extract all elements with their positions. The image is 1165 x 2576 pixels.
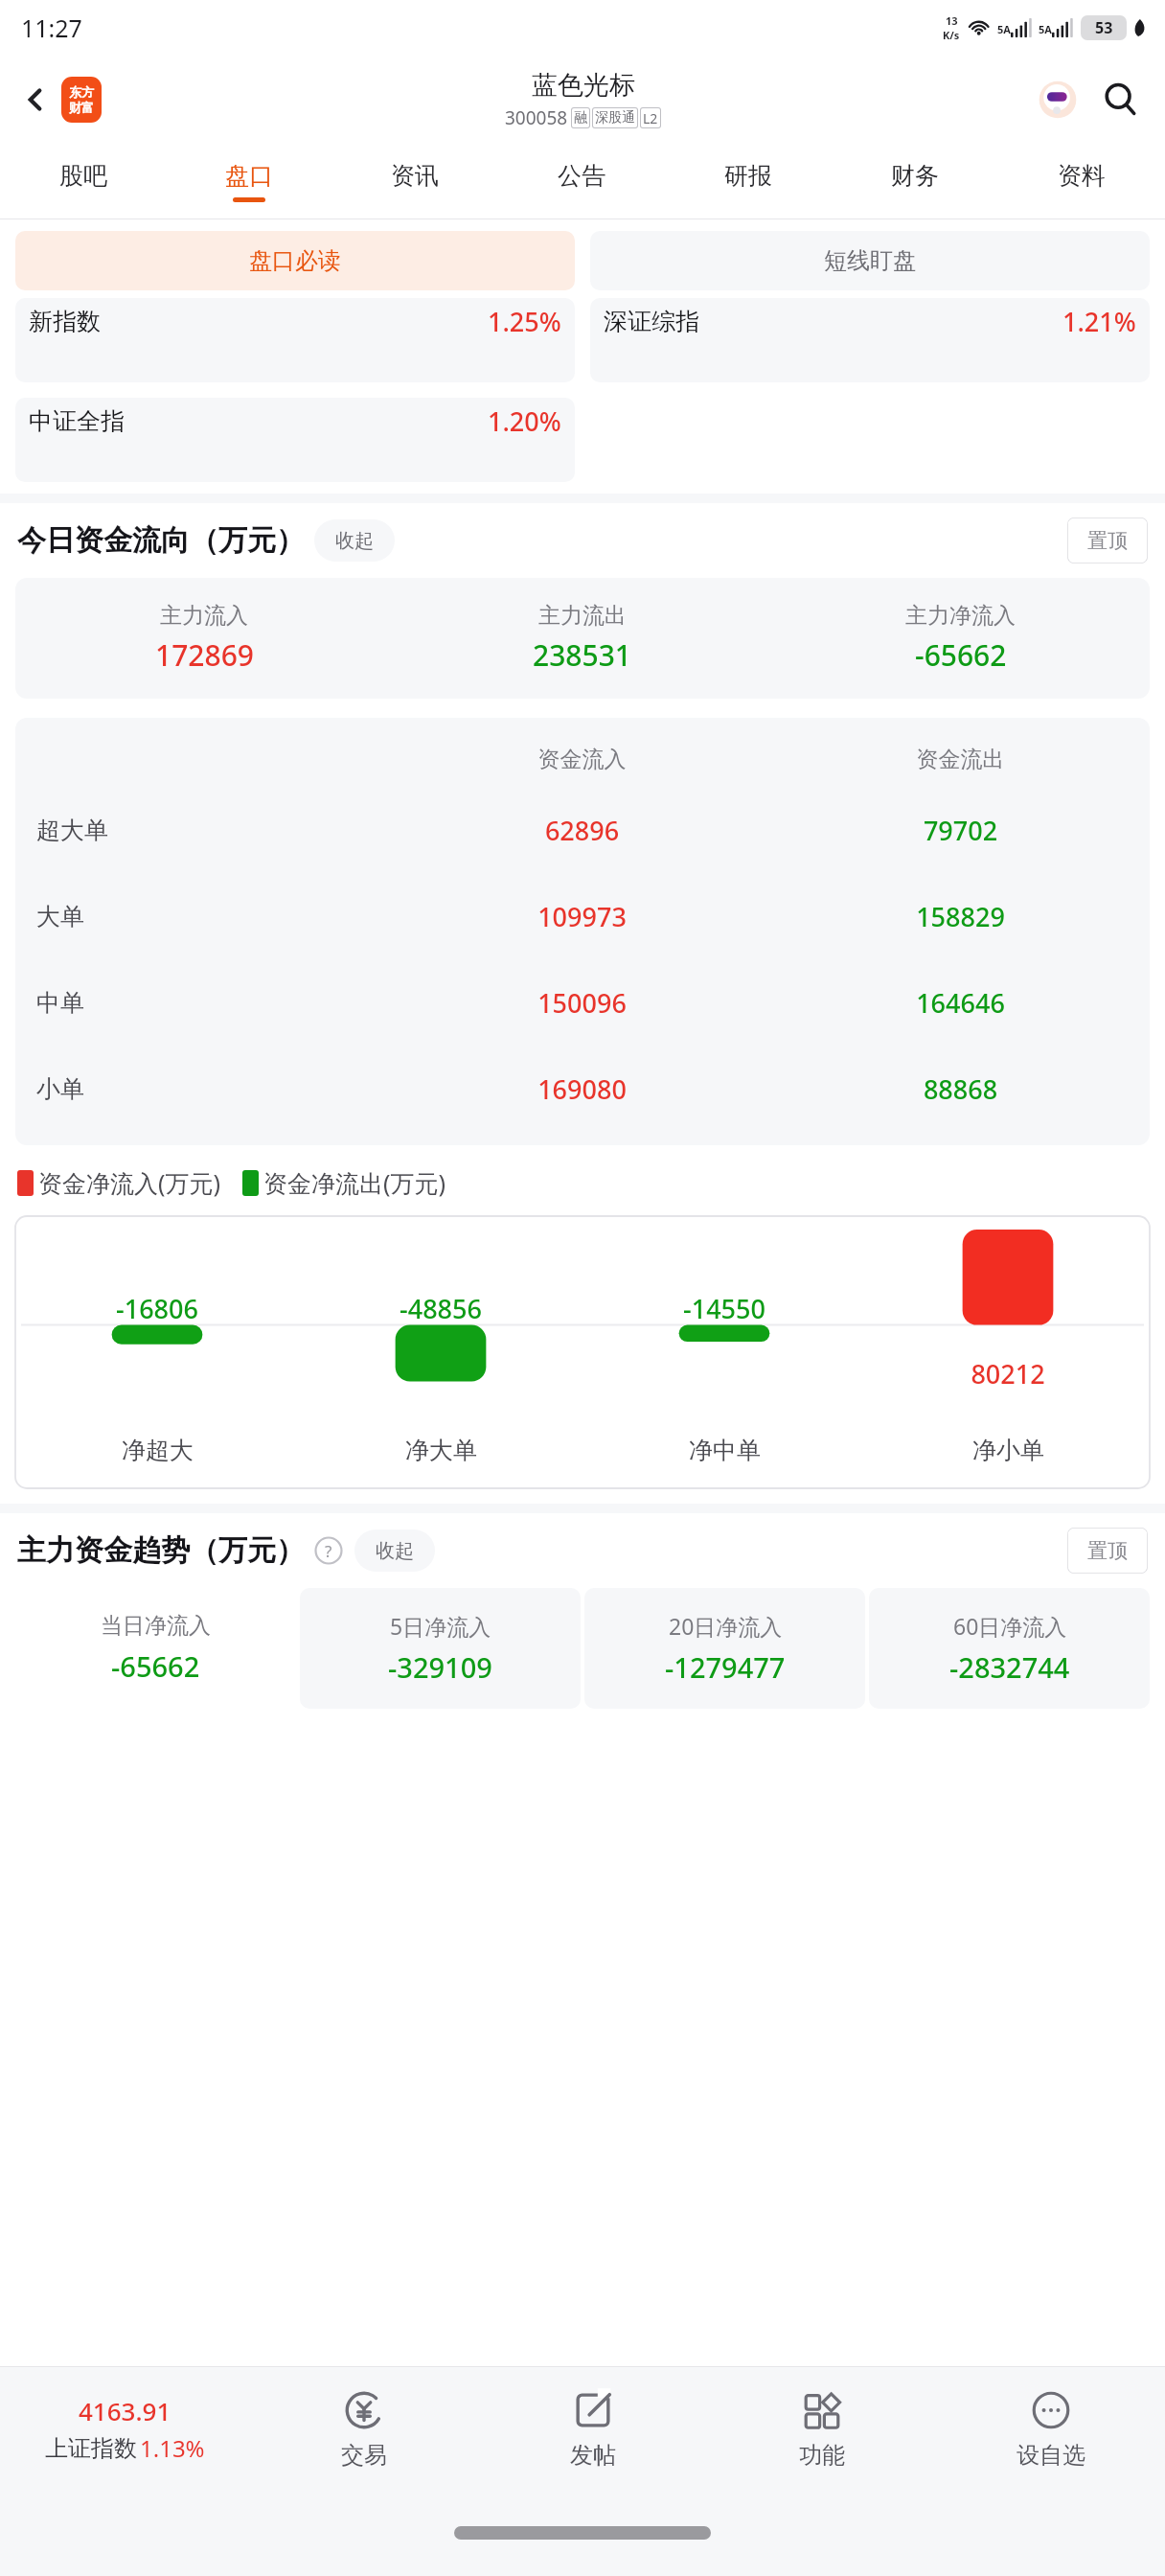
- staticText: 收起: [335, 529, 374, 553]
- button[interactable]: 5日净流入: [300, 1588, 581, 1709]
- staticText: 300058: [505, 105, 568, 130]
- staticText: 超大单: [36, 816, 108, 845]
- button[interactable]: 公告: [498, 144, 665, 218]
- staticText: 主力流出: [538, 602, 627, 630]
- staticText: 158829: [771, 899, 1150, 934]
- staticText: 置顶: [1087, 1538, 1128, 1563]
- button[interactable]: 短线盯盘: [590, 231, 1150, 290]
- staticText: 深证综指: [604, 307, 699, 336]
- staticText: 1.13%: [140, 2432, 205, 2464]
- staticText: 20日净流入: [669, 1611, 783, 1641]
- button[interactable]: 置顶: [1067, 1528, 1148, 1574]
- staticText: 财务: [891, 161, 939, 191]
- staticText: 资金流入: [393, 746, 771, 773]
- staticText: 主力资金趋势（万元）: [17, 1532, 305, 1569]
- staticText: 当日净流入: [101, 1612, 211, 1640]
- button[interactable]: AI assistant: [1033, 75, 1083, 125]
- button[interactable]: 资讯: [331, 144, 498, 218]
- button[interactable]: 4163.91: [0, 2394, 249, 2464]
- staticText: 238531: [533, 635, 631, 675]
- staticText: 1.21%: [1062, 304, 1136, 339]
- staticText: 80212: [971, 1356, 1045, 1391]
- staticText: 5A: [997, 22, 1011, 36]
- staticText: -16806: [116, 1291, 198, 1326]
- staticText: 5A: [1039, 22, 1052, 36]
- button[interactable]: 当日净流入: [15, 1588, 296, 1709]
- button[interactable]: 收起: [314, 519, 395, 562]
- staticText: -48856: [400, 1291, 482, 1326]
- button[interactable]: 资料: [998, 144, 1165, 218]
- button[interactable]: Search: [1096, 75, 1146, 125]
- staticText: -65662: [915, 635, 1007, 675]
- staticText: 169080: [393, 1071, 771, 1107]
- staticText: 今日资金流向（万元）: [17, 522, 305, 559]
- button[interactable]: 研报: [665, 144, 832, 218]
- staticText: 上证指数: [45, 2434, 137, 2463]
- staticText: 研报: [724, 161, 772, 191]
- staticText: 53: [1095, 17, 1113, 38]
- staticText: 62896: [393, 813, 771, 848]
- staticText: 盘口必读: [249, 246, 341, 275]
- staticText: 设自选: [1017, 2441, 1085, 2470]
- staticText: 东方: [69, 84, 94, 100]
- staticText: 股吧: [59, 161, 107, 191]
- staticText: 小单: [36, 1074, 84, 1104]
- button[interactable]: East Money logo: [61, 77, 102, 123]
- staticText: 置顶: [1087, 528, 1128, 553]
- button[interactable]: 交易: [249, 2367, 478, 2490]
- staticText: L2: [643, 109, 658, 127]
- staticText: 13: [946, 13, 958, 28]
- staticText: 79702: [771, 813, 1150, 848]
- staticText: 蓝色光标: [532, 69, 635, 102]
- button[interactable]: 财务: [832, 144, 998, 218]
- button[interactable]: 设自选: [936, 2367, 1165, 2490]
- staticText: 财富: [69, 100, 94, 115]
- button[interactable]: 盘口: [166, 144, 331, 218]
- staticText: 盘口: [225, 161, 273, 191]
- staticText: 中单: [36, 988, 84, 1018]
- staticText: 1.20%: [488, 403, 561, 439]
- button[interactable]: 收起: [354, 1529, 435, 1572]
- staticText: 11:27: [21, 11, 82, 44]
- staticText: 资讯: [391, 161, 439, 191]
- staticText: -329109: [388, 1648, 492, 1686]
- staticText: 资金流出: [771, 746, 1150, 773]
- staticText: 发帖: [570, 2441, 616, 2470]
- button[interactable]: 股吧: [0, 144, 166, 218]
- staticText: 109973: [393, 899, 771, 934]
- staticText: 主力净流入: [905, 602, 1016, 630]
- staticText: 150096: [393, 985, 771, 1021]
- staticText: -2832744: [949, 1648, 1070, 1686]
- button[interactable]: Back: [13, 78, 57, 122]
- staticText: 短线盯盘: [824, 246, 916, 275]
- staticText: 净中单: [689, 1436, 761, 1465]
- staticText: 88868: [771, 1071, 1150, 1107]
- button[interactable]: 60日净流入: [869, 1588, 1150, 1709]
- staticText: 资金净流出(万元): [263, 1166, 446, 1199]
- staticText: 收起: [376, 1539, 414, 1563]
- staticText: 深股通: [595, 109, 635, 126]
- staticText: -1279477: [665, 1648, 786, 1686]
- button[interactable]: 中证全指: [15, 398, 575, 482]
- button[interactable]: Help: [312, 1534, 345, 1567]
- staticText: 主力流入: [160, 602, 248, 630]
- staticText: 净小单: [972, 1436, 1044, 1465]
- staticText: 4163.91: [79, 2394, 171, 2427]
- button[interactable]: 置顶: [1067, 517, 1148, 563]
- staticText: 60日净流入: [953, 1611, 1067, 1641]
- staticText: -65662: [111, 1647, 200, 1685]
- button[interactable]: 新指数: [15, 298, 575, 382]
- button[interactable]: 功能: [707, 2367, 936, 2490]
- button[interactable]: 发帖: [478, 2367, 707, 2490]
- staticText: 公告: [558, 161, 605, 191]
- staticText: 大单: [36, 902, 84, 931]
- staticText: 功能: [799, 2441, 845, 2470]
- button[interactable]: 20日净流入: [584, 1588, 865, 1709]
- button[interactable]: 盘口必读: [15, 231, 575, 290]
- staticText: 融: [574, 109, 587, 126]
- staticText: 5日净流入: [390, 1611, 491, 1641]
- staticText: 中证全指: [29, 406, 125, 436]
- staticText: 净超大: [122, 1436, 194, 1465]
- button[interactable]: 深证综指: [590, 298, 1150, 382]
- staticText: 新指数: [29, 307, 101, 336]
